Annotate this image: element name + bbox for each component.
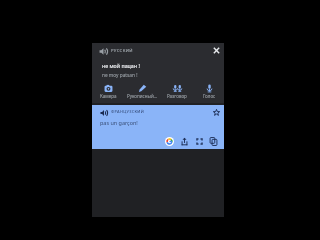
- staticText: Рукописный…: [127, 93, 158, 99]
- button[interactable]: Fullscreen: [195, 137, 204, 146]
- button[interactable]: Copy: [209, 137, 218, 146]
- button[interactable]: Камера: [92, 84, 124, 99]
- button[interactable]: Share: [180, 137, 189, 146]
- staticText: Разговор: [167, 93, 187, 99]
- staticText: ne moy patsan !: [102, 72, 138, 78]
- staticText: не мой пацан !: [102, 62, 140, 69]
- button[interactable]: Голос: [193, 84, 225, 99]
- staticText: ФРАНЦУЗСКИЙ: [111, 109, 144, 114]
- staticText: pas un garçon!: [100, 119, 138, 126]
- button[interactable]: Search with Google: [165, 137, 174, 146]
- staticText: РУССКИЙ: [111, 47, 133, 53]
- button[interactable]: Listen: [99, 47, 108, 56]
- staticText: Камера: [100, 93, 117, 99]
- button[interactable]: Разговор: [161, 84, 193, 99]
- button[interactable]: Save translation: [212, 108, 221, 117]
- button[interactable]: Рукописный…: [126, 84, 158, 99]
- button[interactable]: Close: [212, 46, 221, 55]
- button[interactable]: Listen: [100, 109, 108, 117]
- staticText: Голос: [203, 93, 216, 99]
